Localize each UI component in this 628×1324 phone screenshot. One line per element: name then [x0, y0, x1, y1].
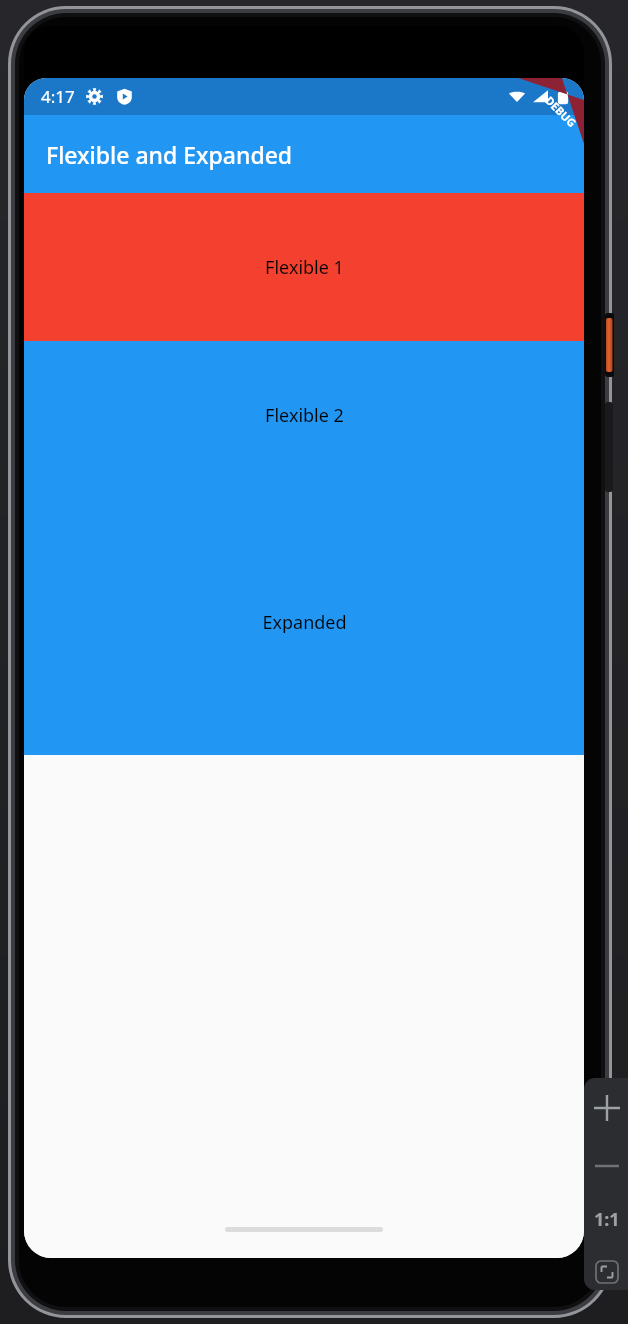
button[interactable]: Flexible 2: [24, 341, 584, 489]
staticText: DEBUG: [542, 93, 580, 130]
staticText: 4:17: [41, 85, 75, 108]
button[interactable]: Zoom in: [585, 1086, 628, 1130]
button[interactable]: Fit to window: [586, 1254, 628, 1290]
staticText: Flexible and Expanded: [46, 139, 293, 170]
staticText: Flexible 2: [265, 403, 344, 428]
button[interactable]: Actual size one to one: [586, 1198, 628, 1240]
button[interactable]: Expanded: [24, 489, 584, 755]
button[interactable]: Flexible 1: [24, 193, 584, 341]
staticText: 1:1: [594, 1207, 620, 1232]
button[interactable]: Zoom out: [587, 1146, 627, 1186]
staticText: Flexible 1: [265, 255, 344, 280]
staticText: Expanded: [262, 610, 347, 635]
